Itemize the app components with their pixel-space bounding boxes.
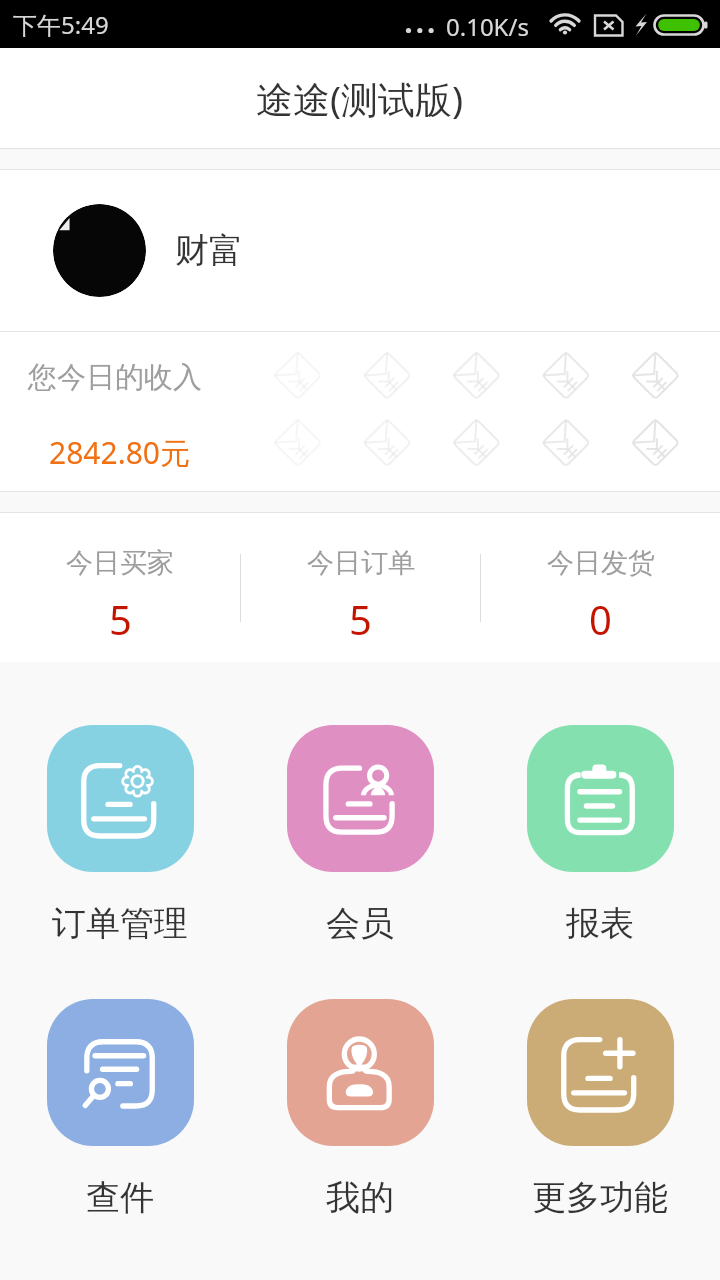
- staticText: 财富: [175, 229, 243, 272]
- button[interactable]: 今日买家: [0, 513, 240, 662]
- staticText: 今日订单: [307, 546, 415, 580]
- staticText: 途途(测试版): [256, 73, 464, 124]
- staticText: 5: [349, 592, 372, 646]
- staticText: 我的: [326, 1176, 394, 1219]
- button[interactable]: 今日订单: [241, 513, 480, 662]
- staticText: 报表: [566, 902, 634, 945]
- staticText: 0: [589, 592, 612, 646]
- button[interactable]: 报表: [480, 725, 720, 999]
- button[interactable]: 今日发货: [481, 513, 720, 662]
- staticText: 您今日的收入: [28, 359, 202, 396]
- button[interactable]: Avatar: [0, 170, 720, 331]
- button[interactable]: 查件: [0, 999, 240, 1273]
- button[interactable]: 更多功能: [480, 999, 720, 1273]
- staticText: 更多功能: [532, 1176, 668, 1219]
- staticText: 今日买家: [66, 546, 174, 580]
- staticText: 下午5:49: [13, 8, 109, 41]
- staticText: 2842.80元: [49, 432, 190, 473]
- staticText: 会员: [326, 902, 394, 945]
- button[interactable]: 我的: [240, 999, 480, 1273]
- button[interactable]: Avatar: [53, 204, 146, 297]
- staticText: 0.10K/s: [446, 10, 529, 43]
- staticText: 订单管理: [52, 902, 188, 945]
- button[interactable]: 会员: [240, 725, 480, 999]
- button[interactable]: 订单管理: [0, 725, 240, 999]
- staticText: 今日发货: [547, 546, 655, 580]
- button[interactable]: 您今日的收入: [0, 332, 720, 491]
- staticText: 5: [109, 592, 132, 646]
- staticText: 查件: [86, 1176, 154, 1219]
